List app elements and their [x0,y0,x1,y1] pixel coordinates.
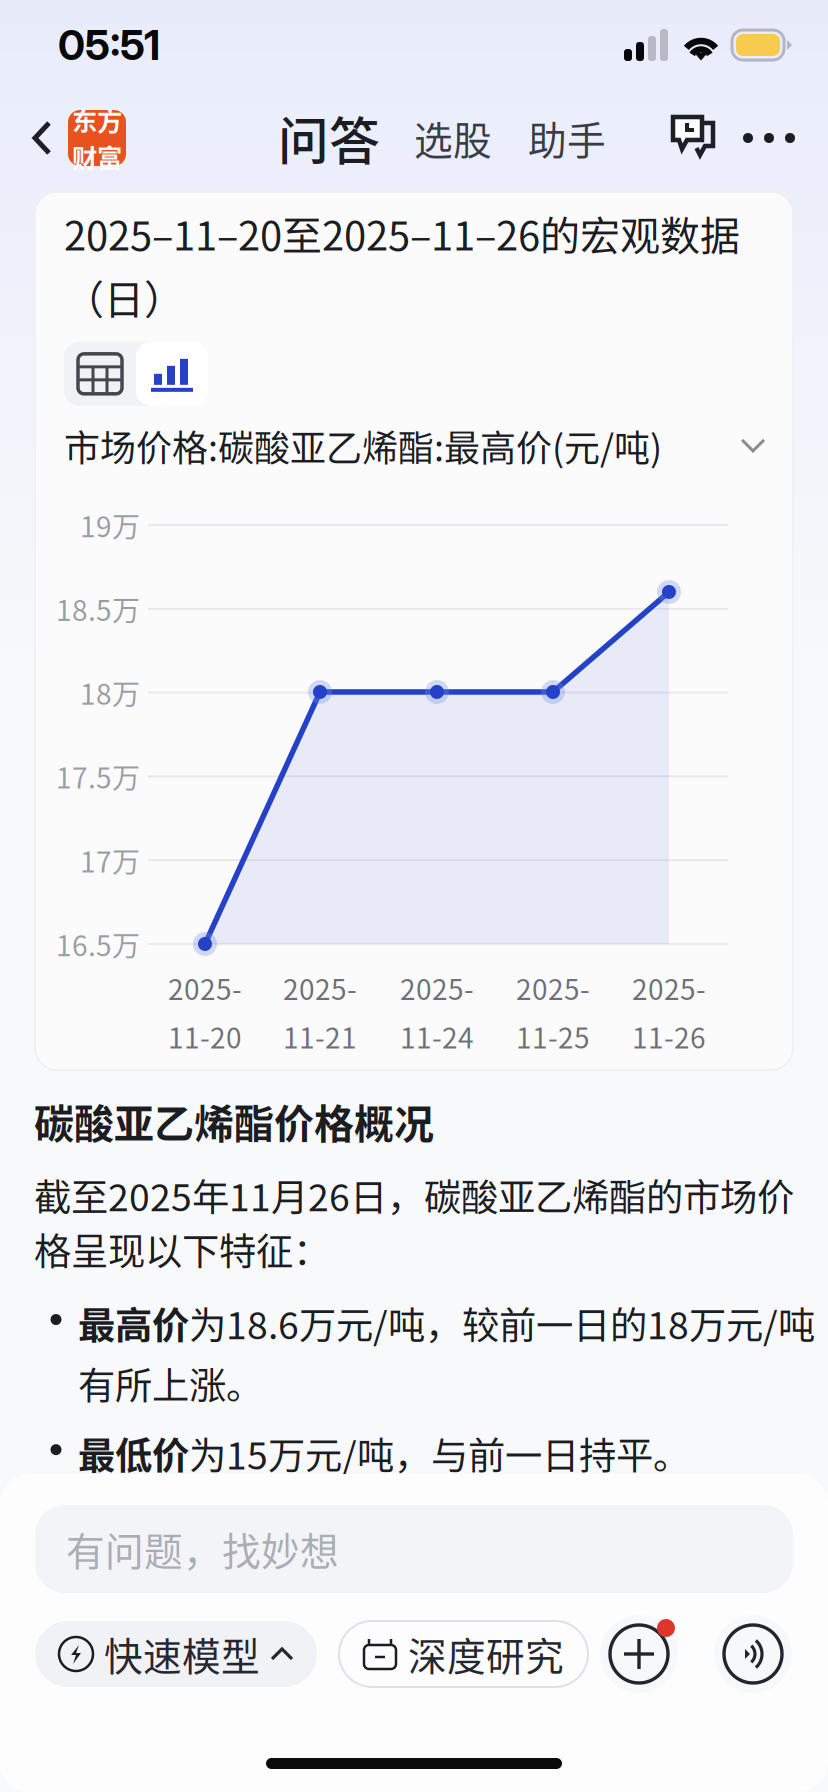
staticText: 18.5万 [56,588,140,629]
button[interactable]: 快速模型 [35,1621,317,1687]
button[interactable]: 问答 [278,85,380,191]
staticText: 2025- [283,967,357,1008]
staticText: 最高价 [78,1296,189,1350]
staticText: 11-26 [632,1016,706,1056]
staticText: 深度研究 [408,1626,564,1682]
button[interactable]: 深度研究 [339,1621,588,1687]
staticText: 为18.6万元/吨，较前一日的18万元/吨 [189,1296,815,1350]
staticText: 2025- [168,967,242,1008]
staticText: （日） [64,268,184,326]
button[interactable]: 有问题，找妙想 [35,1505,793,1593]
staticText: 05:51 [58,20,160,70]
staticText: 11-20 [168,1016,242,1056]
staticText: 最低价 [78,1426,189,1480]
staticText: 东方 [72,101,122,138]
button[interactable]: 语音输入 [714,1615,792,1693]
staticText: 2025- [632,967,706,1008]
button[interactable]: 助手 [492,94,606,182]
button[interactable]: 选股 [380,94,492,182]
staticText: 11-25 [516,1016,590,1056]
button[interactable]: 东方财富 [68,110,126,166]
staticText: 18万 [80,672,140,713]
staticText: 11-21 [283,1016,357,1056]
staticText: 17.5万 [56,756,140,797]
staticText: 财富 [72,138,122,175]
staticText: 2025- [400,967,474,1008]
staticText: 市场价格:碳酸亚乙烯酯:最高价(元/吨) [64,420,662,472]
staticText: 2025–11–20至2025–11–26的宏观数据 [64,204,740,262]
staticText: 2025- [516,967,590,1008]
staticText: 选股 [414,110,492,166]
button[interactable]: 历史记录 [656,114,732,162]
staticText: 为15万元/吨，与前一日持平。 [189,1426,690,1480]
staticText: 有问题，找妙想 [66,1521,339,1577]
button[interactable]: 更多 [732,114,806,162]
button[interactable]: 表格视图 [64,342,136,406]
staticText: 19万 [80,505,140,545]
staticText: 问答 [278,101,380,175]
staticText: 快速模型 [104,1626,260,1682]
button[interactable]: 添加 [600,1615,678,1693]
button[interactable]: 图表视图 [136,342,208,406]
button[interactable]: 返回 [0,96,68,180]
staticText: 截至2025年11月26日，碳酸亚乙烯酯的市场价格呈现以下特征： [34,1168,794,1276]
staticText: 17万 [80,840,140,880]
staticText: 碳酸亚乙烯酯价格概况 [34,1092,434,1150]
staticText: 11-24 [400,1016,474,1056]
staticText: 助手 [528,110,606,166]
staticText: 有所上涨。 [78,1356,263,1410]
staticText: 16.5万 [56,924,140,964]
